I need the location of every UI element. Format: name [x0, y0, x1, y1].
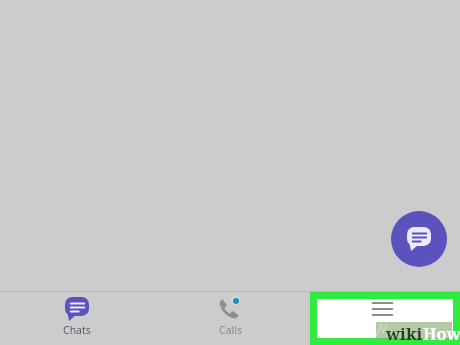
button[interactable]: Start chat	[391, 211, 447, 267]
button[interactable]: More	[310, 292, 460, 345]
button[interactable]: Calls	[154, 292, 307, 345]
staticText: How	[423, 322, 460, 344]
staticText: More	[371, 323, 397, 337]
staticText: Calls	[219, 323, 242, 337]
staticText: Chats	[63, 323, 91, 337]
staticText: wiki	[386, 322, 423, 344]
button[interactable]: Chats	[0, 292, 154, 345]
button[interactable]: More	[307, 292, 460, 345]
